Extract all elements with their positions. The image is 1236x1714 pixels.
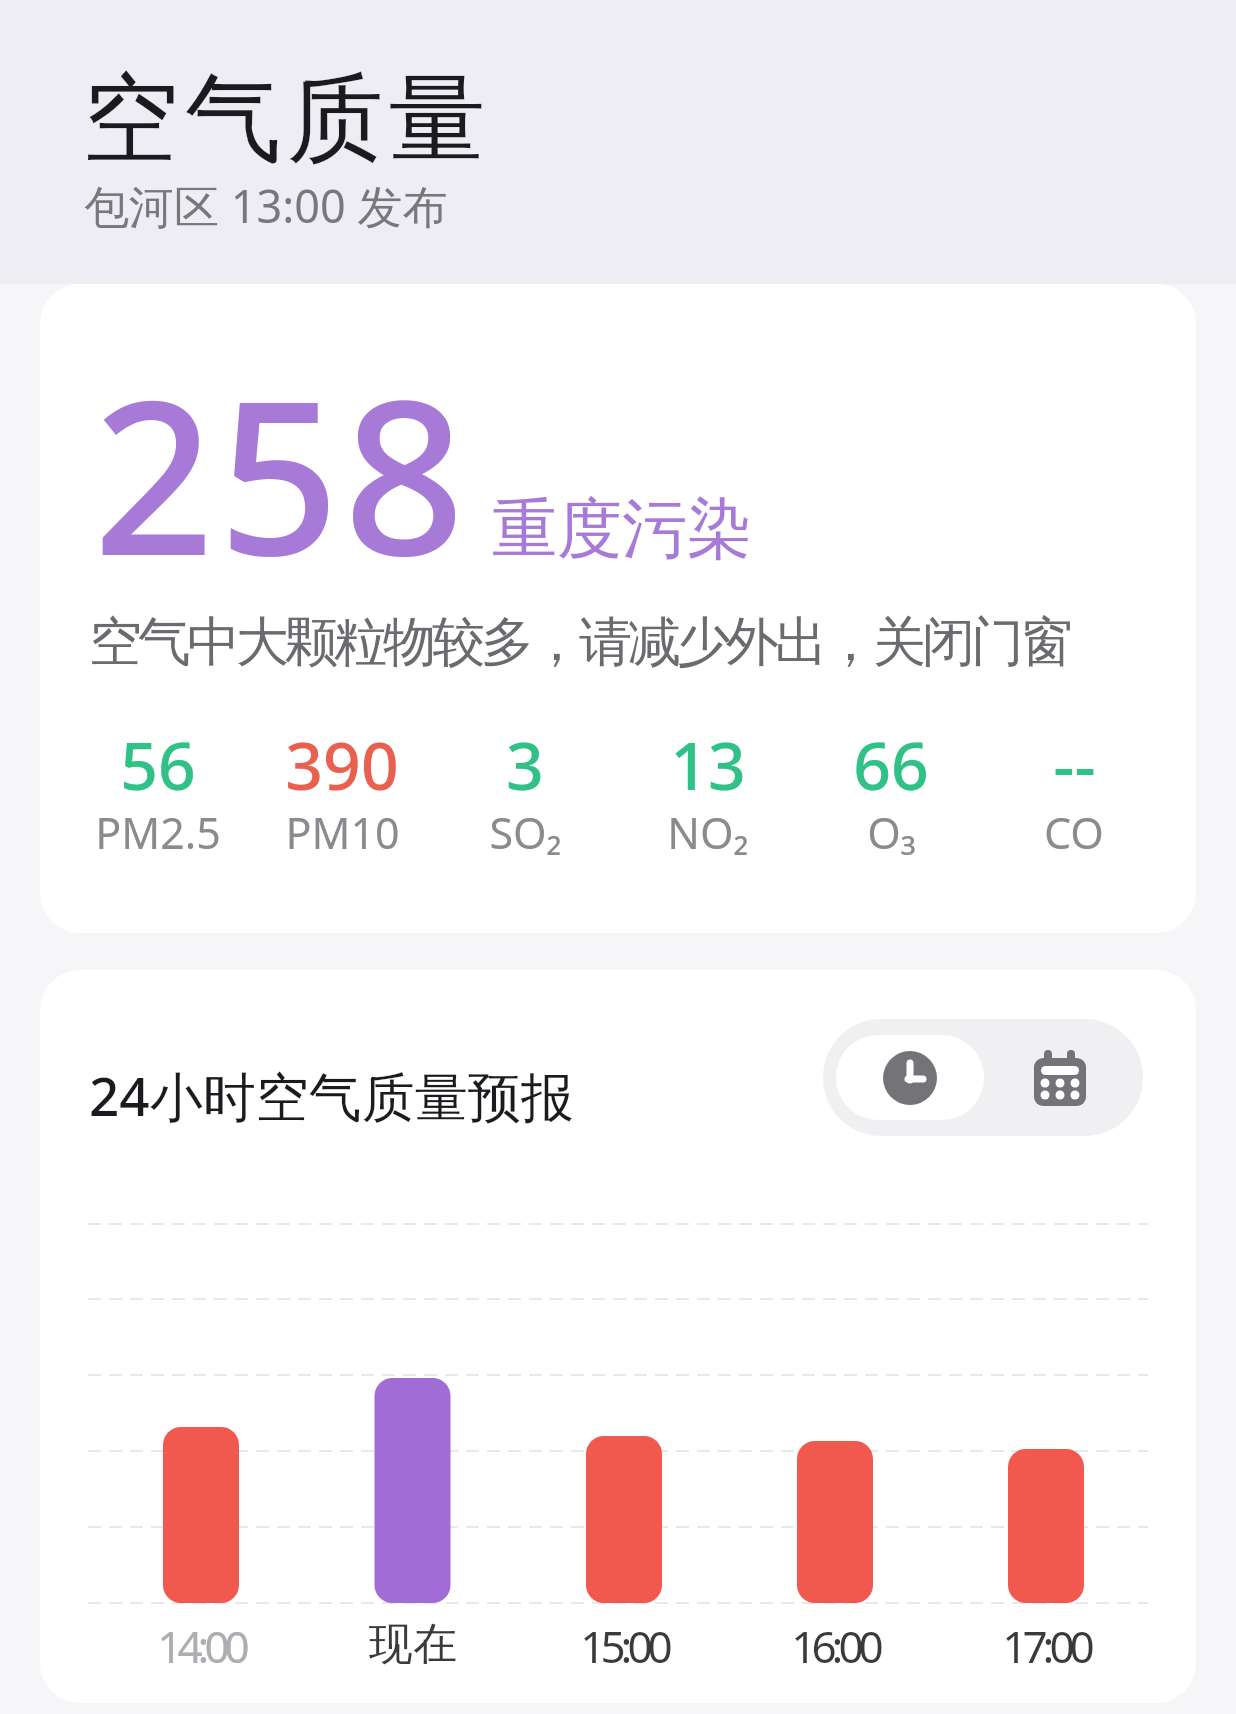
staticText: 3 [506, 719, 544, 809]
button[interactable] [836, 1035, 984, 1120]
staticText: 390 [285, 719, 399, 809]
staticText: O₃ [867, 803, 916, 862]
staticText: 空气中大颗粒物较多，请减少外出，关闭门窗 [91, 609, 1071, 676]
staticText: 24小时空气质量预报 [89, 1059, 574, 1131]
staticText: SO₂ [489, 803, 562, 862]
staticText: 56 [120, 719, 196, 809]
staticText: 包河区 13:00 发布 [84, 175, 448, 236]
staticText: NO₂ [667, 803, 749, 862]
staticText: 17:00 [1002, 1616, 1090, 1676]
staticText: PM10 [285, 803, 400, 862]
staticText: 15:00 [580, 1616, 668, 1676]
staticText: 重度污染 [492, 488, 752, 570]
staticText: 16:00 [791, 1616, 879, 1676]
staticText: CO [1044, 803, 1104, 862]
staticText: PM2.5 [95, 803, 221, 862]
button[interactable] [993, 1035, 1126, 1120]
staticText: -- [1053, 719, 1096, 809]
staticText: 现在 [369, 1617, 457, 1672]
staticText: 66 [853, 719, 929, 809]
staticText: 14:00 [157, 1616, 245, 1676]
staticText: 空气质量 [80, 59, 488, 181]
staticText: 258 [93, 328, 469, 617]
staticText: 13 [670, 719, 746, 809]
